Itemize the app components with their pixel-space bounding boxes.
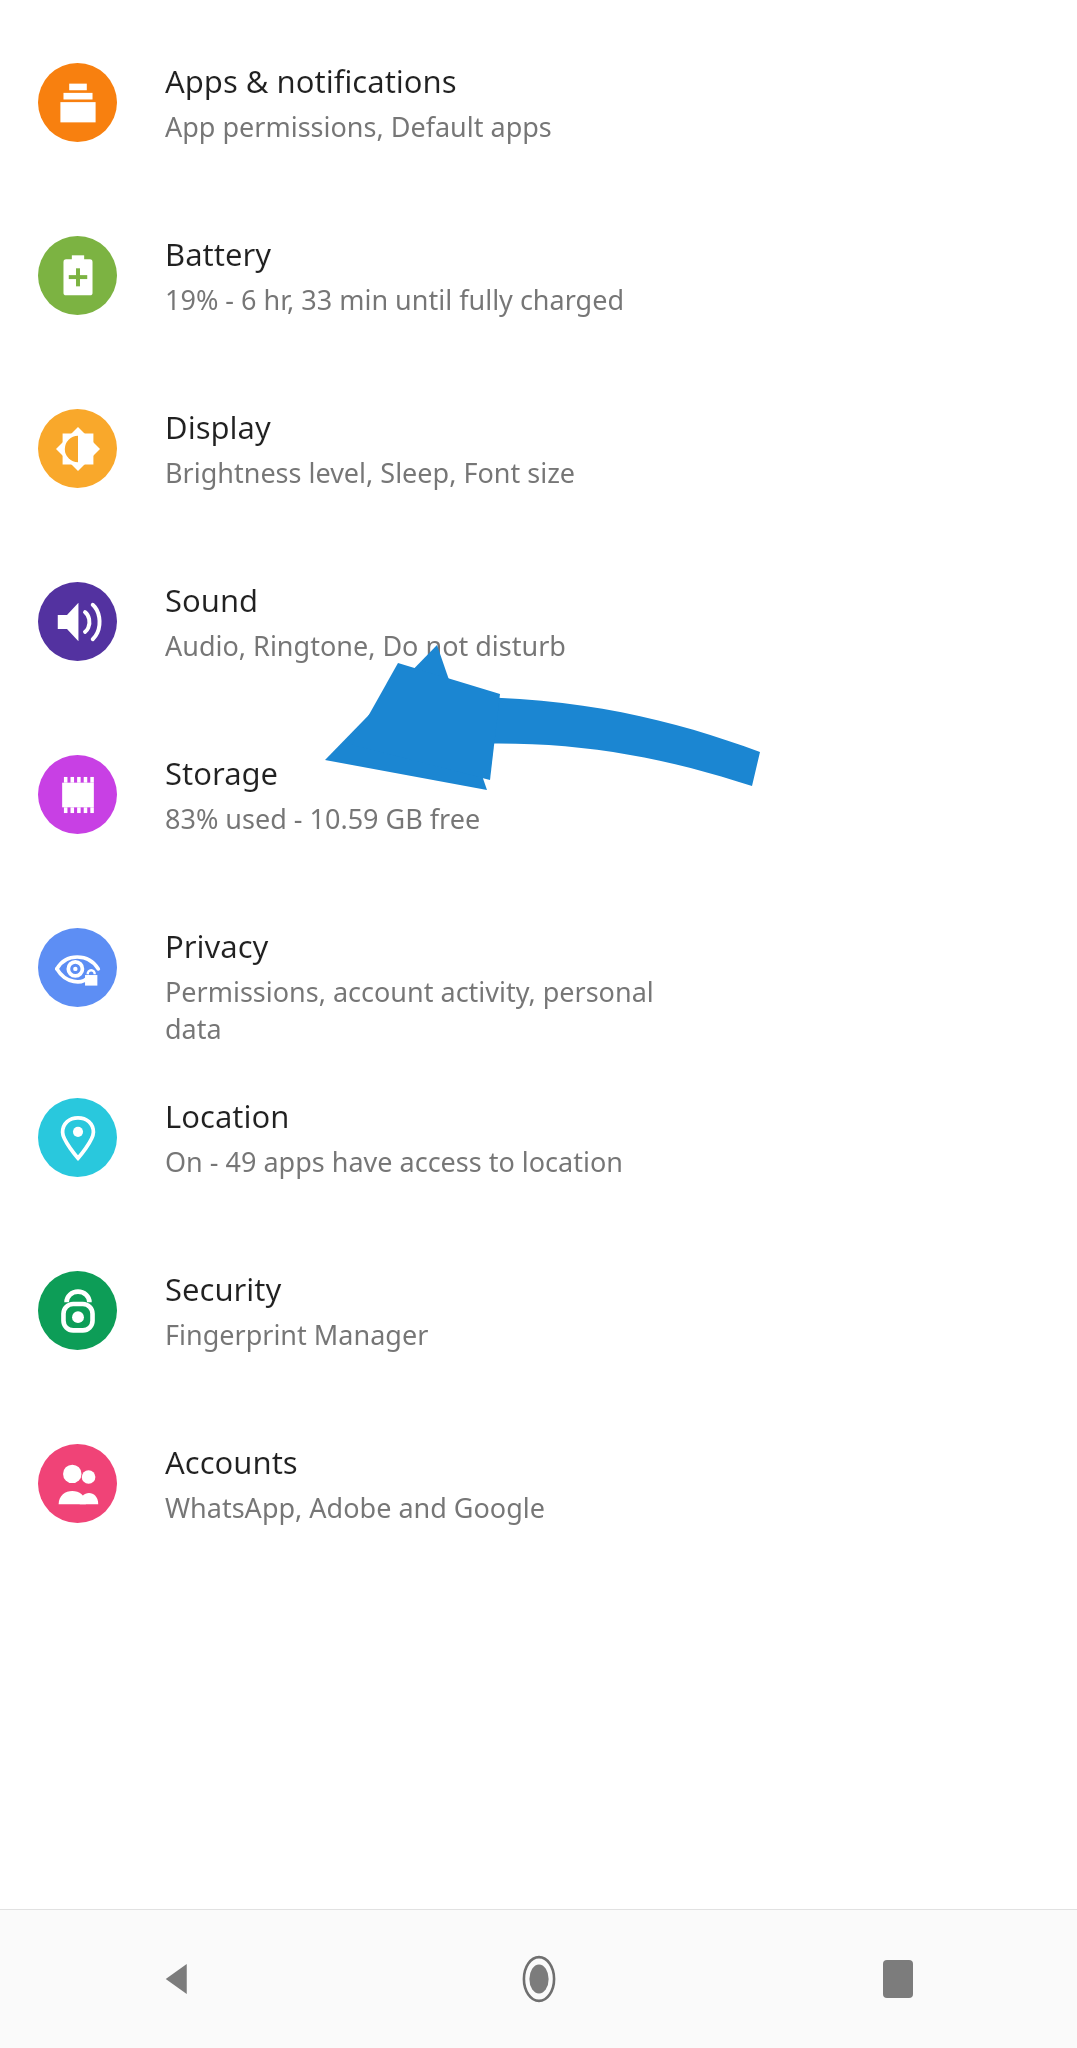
button[interactable]: Privacy (0, 925, 1077, 1047)
button[interactable]: Security (0, 1268, 1077, 1353)
button[interactable]: Sound (0, 579, 1077, 664)
staticText: On - 49 apps have access to location (165, 1143, 623, 1180)
button[interactable]: Accounts (0, 1441, 1077, 1526)
staticText: Security (165, 1268, 282, 1310)
staticText: App permissions, Default apps (165, 108, 552, 145)
staticText: Location (165, 1095, 290, 1137)
staticText: Permissions, account activity, personal … (165, 973, 654, 1047)
staticText: Fingerprint Manager (165, 1316, 429, 1353)
button[interactable]: Battery (0, 233, 1077, 318)
staticText: WhatsApp, Adobe and Google (165, 1489, 545, 1526)
button[interactable]: Storage (0, 752, 1077, 837)
staticText: Apps & notifications (165, 60, 457, 102)
staticText: Sound (165, 579, 259, 621)
staticText: Accounts (165, 1441, 298, 1483)
button[interactable]: Location (0, 1095, 1077, 1180)
staticText: Display (165, 406, 271, 448)
button[interactable]: Back (0, 1909, 359, 2048)
staticText: Storage (165, 752, 279, 794)
button[interactable]: Recent apps (718, 1909, 1077, 2048)
staticText: Audio, Ringtone, Do not disturb (165, 627, 566, 664)
staticText: Brightness level, Sleep, Font size (165, 454, 576, 491)
button[interactable]: Home (359, 1909, 718, 2048)
staticText: Privacy (165, 925, 269, 967)
button[interactable]: Apps & notifications (0, 60, 1077, 145)
staticText: Battery (165, 233, 272, 275)
staticText: 19% - 6 hr, 33 min until fully charged (165, 281, 624, 318)
button[interactable]: Display (0, 406, 1077, 491)
staticText: 83% used - 10.59 GB free (165, 800, 481, 837)
